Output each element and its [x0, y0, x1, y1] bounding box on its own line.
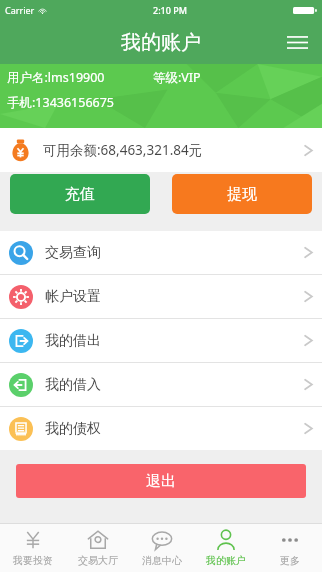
staticText: 帐户设置: [45, 288, 101, 306]
button[interactable]: 我的账户: [194, 524, 258, 572]
staticText: 等级:VIP: [153, 69, 201, 86]
button[interactable]: 更多: [258, 524, 322, 572]
button[interactable]: 我要投资: [0, 524, 65, 572]
button[interactable]: 退出: [16, 464, 306, 498]
button[interactable]: 充值: [10, 174, 150, 214]
button[interactable]: 我的借入: [0, 363, 322, 406]
button[interactable]: 交易查询: [0, 231, 322, 274]
staticText: 我的债权: [45, 420, 101, 438]
staticText: 2:10 PM: [153, 4, 187, 16]
staticText: 退出: [146, 472, 176, 491]
staticText: 可用余额:68,463,321.84元: [43, 141, 203, 159]
staticText: 用户名:lms19900: [7, 69, 105, 86]
staticText: 我的账户: [121, 30, 201, 55]
staticText: 更多: [280, 554, 300, 567]
button[interactable]: 交易大厅: [65, 524, 130, 572]
staticText: 充值: [65, 185, 95, 204]
staticText: 交易大厅: [78, 554, 118, 567]
staticText: Carrier: [5, 4, 35, 16]
button[interactable]: 我的债权: [0, 407, 322, 450]
button[interactable]: 提现: [172, 174, 312, 214]
staticText: 提现: [227, 185, 257, 204]
staticText: 我要投资: [13, 554, 53, 567]
staticText: 我的借入: [45, 376, 101, 394]
staticText: 我的借出: [45, 332, 101, 350]
staticText: 我的账户: [206, 554, 246, 567]
staticText: 手机:13436156675: [7, 94, 115, 111]
staticText: 消息中心: [142, 554, 182, 567]
button[interactable]: 帐户设置: [0, 275, 322, 318]
button[interactable]: 我的借出: [0, 319, 322, 362]
button[interactable]: Menu: [280, 25, 314, 59]
staticText: 交易查询: [45, 244, 101, 262]
button[interactable]: 可用余额:68,463,321.84元: [0, 128, 322, 172]
button[interactable]: 消息中心: [130, 524, 194, 572]
